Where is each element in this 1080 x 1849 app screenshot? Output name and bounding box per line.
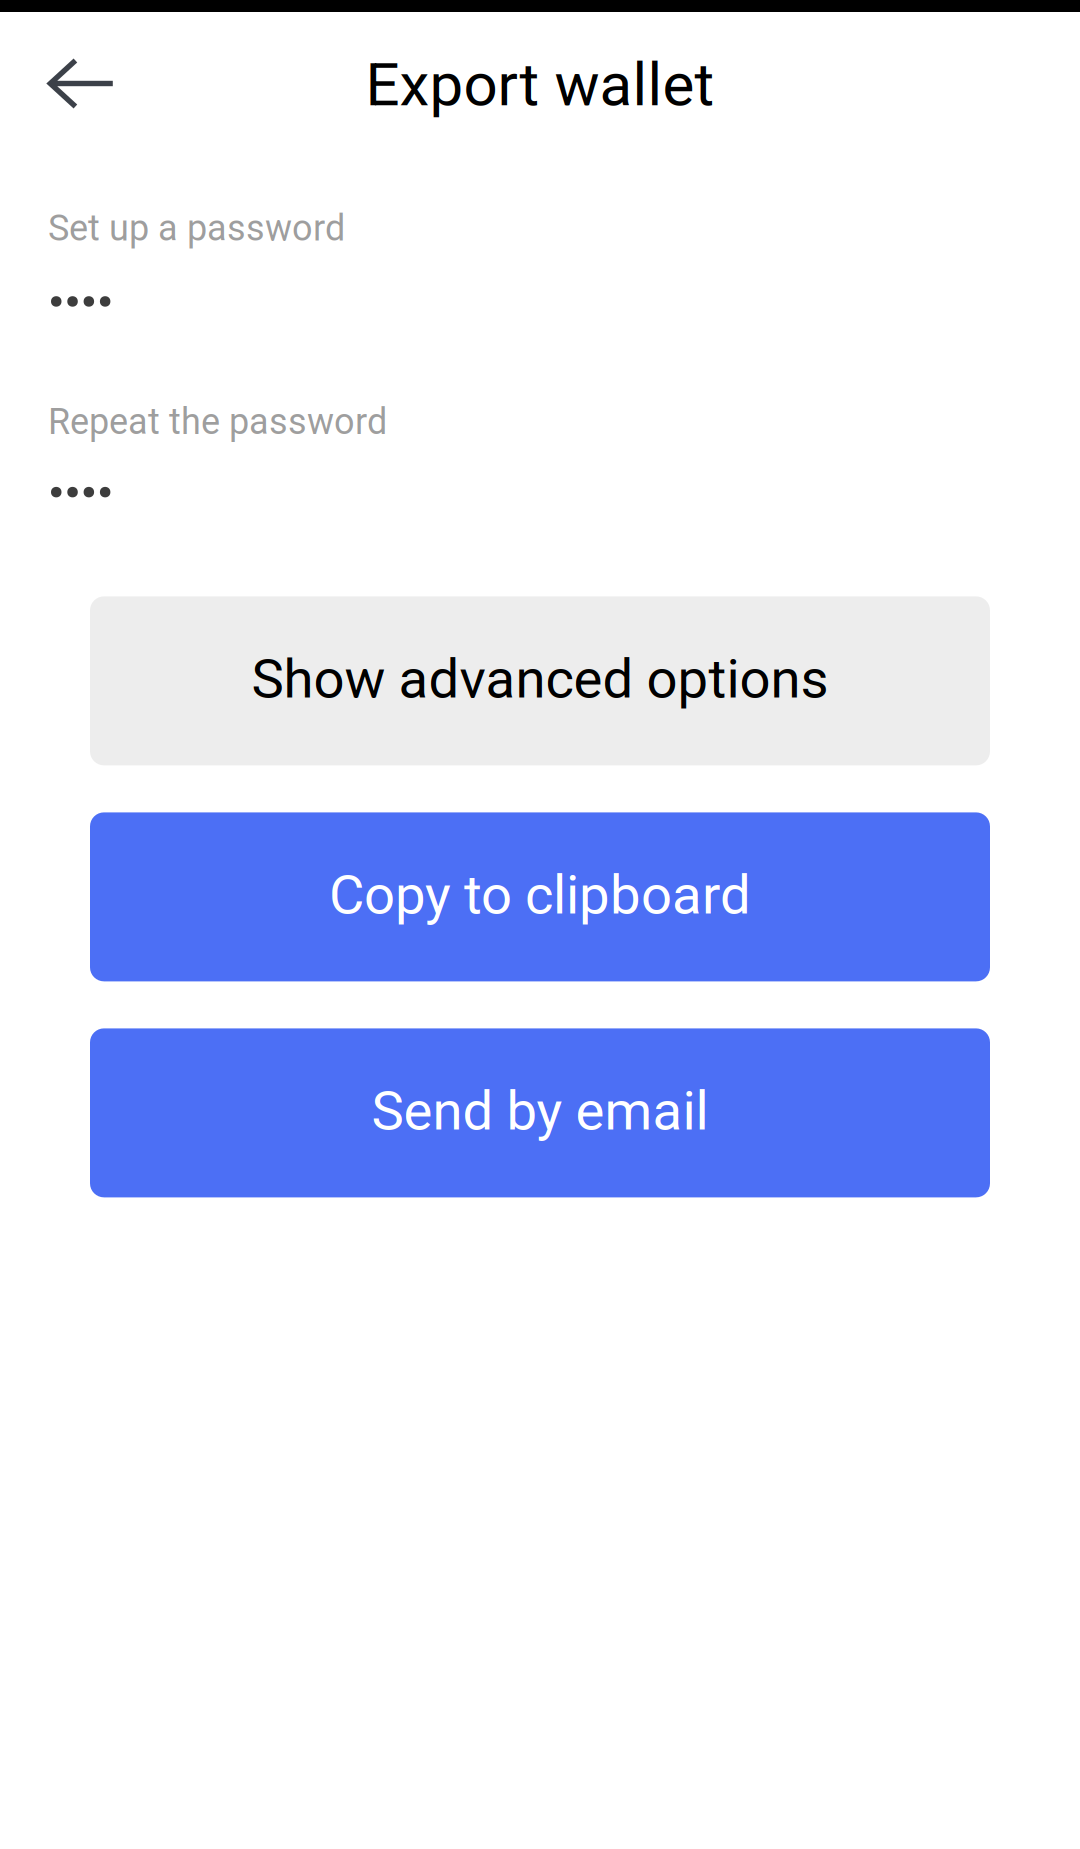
staticText: Repeat the password [48, 401, 387, 443]
button[interactable]: Send by email [90, 1028, 990, 1197]
button[interactable]: Copy to clipboard [90, 812, 990, 981]
staticText: Send by email [371, 1079, 708, 1143]
staticText: Show advanced options [251, 647, 828, 711]
staticText: Set up a password [48, 207, 345, 249]
staticText: Export wallet [365, 49, 714, 120]
staticText: Copy to clipboard [329, 863, 751, 927]
button[interactable]: Show advanced options [90, 596, 990, 765]
button[interactable]: Back [27, 35, 137, 131]
